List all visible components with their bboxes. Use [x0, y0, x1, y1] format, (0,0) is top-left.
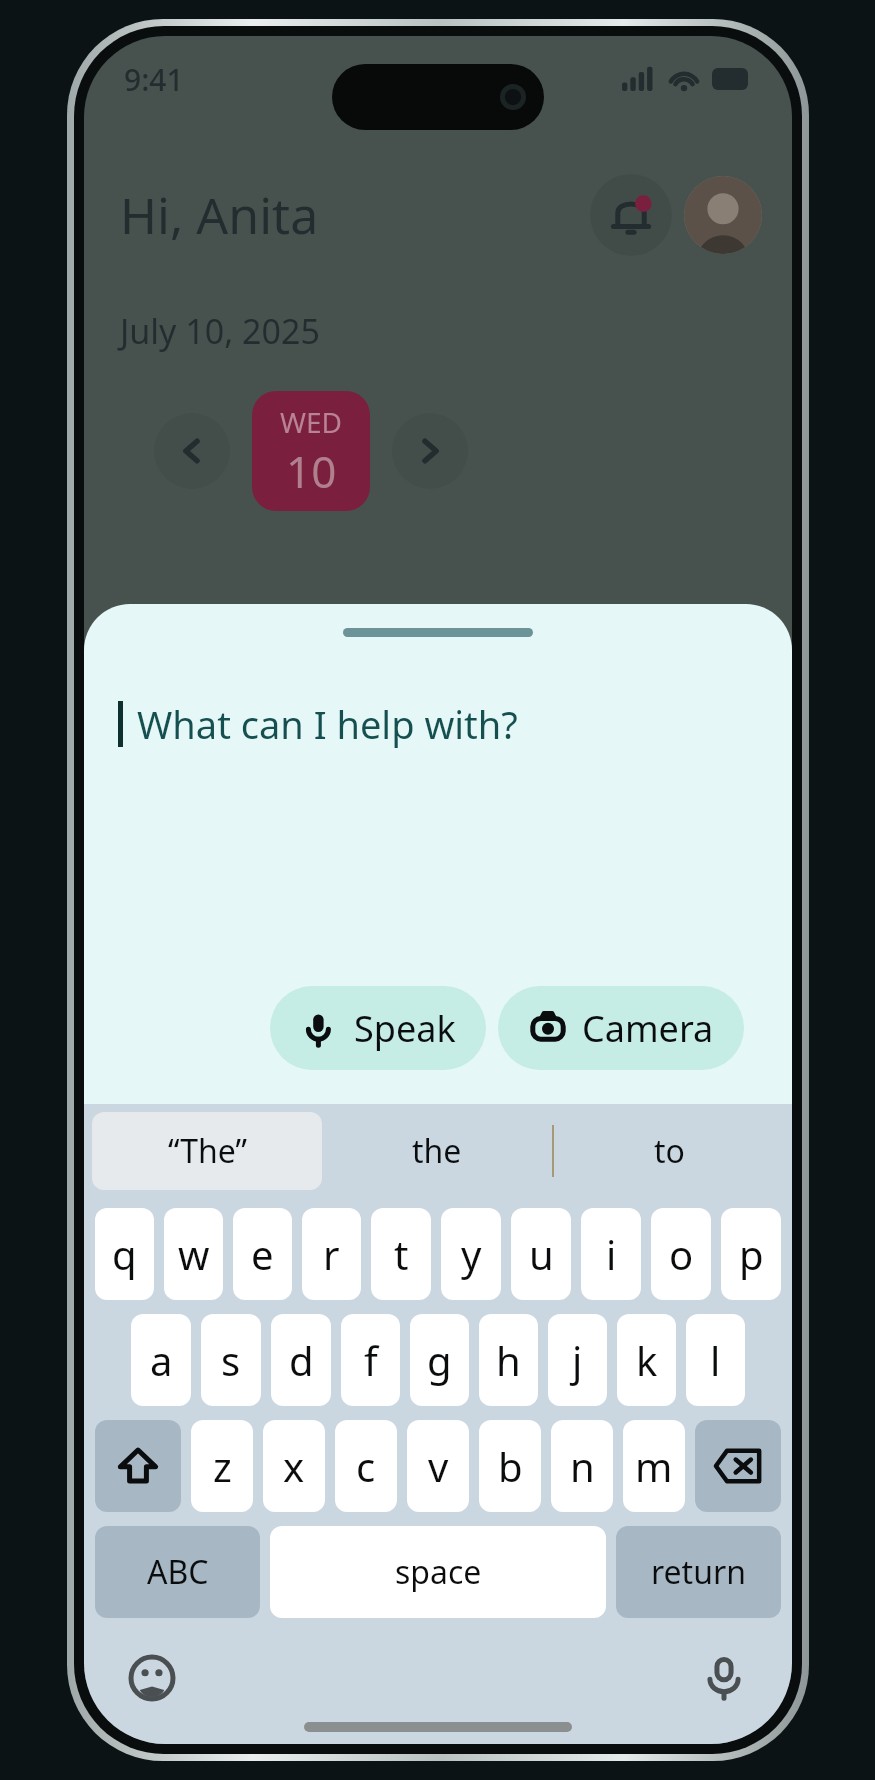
staticText: j [572, 1333, 583, 1387]
button[interactable]: m [623, 1420, 685, 1512]
staticText: return [651, 1550, 746, 1594]
button[interactable]: space [270, 1526, 606, 1618]
button[interactable]: Camera [498, 986, 744, 1070]
staticText: “The” [168, 1129, 247, 1173]
button[interactable]: o [651, 1208, 711, 1300]
staticText: WED [280, 403, 343, 441]
staticText: What can I help with? [137, 698, 518, 750]
button[interactable]: the [322, 1129, 552, 1173]
button[interactable]: “The” [92, 1112, 322, 1190]
button[interactable]: d [271, 1314, 331, 1406]
staticText: r [323, 1227, 340, 1281]
staticText: z [213, 1439, 232, 1493]
staticText: d [289, 1333, 314, 1387]
staticText: ABC [147, 1550, 209, 1594]
button[interactable]: WED [252, 391, 370, 511]
staticText: t [394, 1227, 409, 1281]
staticText: k [636, 1333, 658, 1387]
staticText: v [428, 1439, 449, 1493]
button[interactable]: p [721, 1208, 781, 1300]
button[interactable]: Emoji [124, 1650, 180, 1706]
button[interactable]: t [371, 1208, 431, 1300]
button[interactable]: to [554, 1129, 784, 1173]
button[interactable]: a [131, 1314, 191, 1406]
button[interactable]: c [335, 1420, 397, 1512]
button[interactable]: n [551, 1420, 613, 1512]
staticText: m [635, 1439, 673, 1493]
staticText: h [496, 1333, 521, 1387]
staticText: o [669, 1227, 694, 1281]
button[interactable]: Previous day [154, 413, 230, 489]
staticText: e [251, 1227, 274, 1281]
button[interactable]: i [581, 1208, 641, 1300]
button[interactable]: j [548, 1314, 607, 1406]
button[interactable]: y [441, 1208, 501, 1300]
staticText: Hi, Anita [120, 181, 319, 249]
staticText: the [412, 1129, 462, 1173]
button[interactable]: x [263, 1420, 325, 1512]
button[interactable]: q [95, 1208, 154, 1300]
staticText: s [221, 1333, 241, 1387]
button[interactable]: z [191, 1420, 253, 1512]
staticText: n [570, 1439, 595, 1493]
button[interactable]: Dictate [696, 1650, 752, 1706]
staticText: q [112, 1227, 137, 1281]
button[interactable]: f [341, 1314, 400, 1406]
button[interactable]: Next day [392, 413, 468, 489]
staticText: 9:41 [124, 59, 184, 100]
button[interactable]: Backspace [695, 1420, 781, 1512]
staticText: i [606, 1227, 617, 1281]
staticText: space [395, 1550, 482, 1594]
button[interactable]: return [616, 1526, 781, 1618]
button[interactable]: Shift [95, 1420, 181, 1512]
button[interactable]: s [201, 1314, 261, 1406]
staticText: a [150, 1333, 173, 1387]
button[interactable]: Speak [270, 986, 486, 1070]
staticText: y [461, 1227, 482, 1281]
staticText: to [654, 1129, 685, 1173]
staticText: c [356, 1439, 376, 1493]
button[interactable]: u [511, 1208, 571, 1300]
staticText: July 10, 2025 [120, 308, 320, 354]
button[interactable]: e [233, 1208, 292, 1300]
button[interactable]: h [479, 1314, 538, 1406]
button[interactable]: k [617, 1314, 676, 1406]
button[interactable]: w [164, 1208, 223, 1300]
button[interactable]: v [407, 1420, 469, 1512]
staticText: u [529, 1227, 554, 1281]
button[interactable]: r [302, 1208, 361, 1300]
staticText: Camera [582, 1004, 714, 1053]
staticText: 10 [286, 441, 337, 501]
staticText: w [178, 1227, 210, 1281]
staticText: l [710, 1333, 721, 1387]
staticText: g [427, 1333, 452, 1387]
staticText: p [739, 1227, 764, 1281]
staticText: Speak [354, 1004, 456, 1053]
button[interactable]: b [479, 1420, 541, 1512]
button[interactable]: Profile [684, 176, 762, 254]
button[interactable]: ABC [95, 1526, 260, 1618]
button[interactable]: l [686, 1314, 745, 1406]
staticText: x [283, 1439, 305, 1493]
staticText: f [364, 1333, 378, 1387]
staticText: b [498, 1439, 523, 1493]
button[interactable]: Notifications [590, 174, 672, 256]
button[interactable]: g [410, 1314, 469, 1406]
